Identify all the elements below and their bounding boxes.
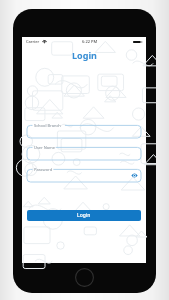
button[interactable]: School Branch bbox=[27, 123, 141, 138]
button[interactable]: Password bbox=[27, 167, 141, 182]
staticText: School Branch bbox=[34, 123, 61, 128]
staticText: 6:22 PM bbox=[82, 39, 98, 44]
button[interactable]: Login bbox=[27, 210, 141, 221]
staticText: Carrier bbox=[26, 39, 40, 44]
staticText: Login bbox=[72, 49, 97, 61]
staticText: Password bbox=[34, 167, 53, 172]
button[interactable]: User Name bbox=[27, 145, 141, 160]
staticText: User Name bbox=[34, 145, 56, 150]
button[interactable]: Show password bbox=[131, 172, 138, 179]
staticText: Login bbox=[77, 212, 91, 219]
